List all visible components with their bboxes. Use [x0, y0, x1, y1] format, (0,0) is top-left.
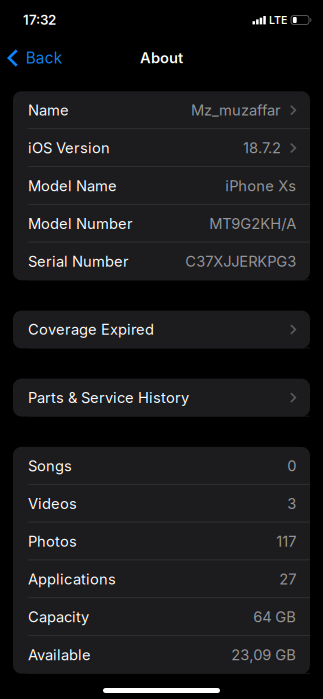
staticText: C37XJJERKPG3 — [185, 252, 296, 270]
button[interactable]: Name — [13, 91, 310, 129]
staticText: 3 — [287, 495, 296, 512]
staticText: 17:32 — [23, 12, 56, 28]
staticText: 64 GB — [253, 608, 296, 626]
button[interactable]: Parts & Service History — [13, 379, 310, 416]
staticText: Coverage Expired — [28, 321, 154, 338]
button[interactable]: Coverage Expired — [13, 311, 310, 348]
staticText: Photos — [28, 532, 77, 550]
staticText: Applications — [28, 570, 116, 588]
staticText: Serial Number — [28, 252, 129, 270]
staticText: 0 — [287, 457, 296, 475]
staticText: iOS Version — [28, 139, 110, 157]
staticText: iPhone Xs — [225, 177, 296, 195]
staticText: Name — [28, 101, 69, 119]
staticText: Model Number — [28, 215, 133, 232]
staticText: Videos — [28, 495, 77, 512]
staticText: About — [140, 49, 183, 67]
staticText: Parts & Service History — [28, 389, 189, 406]
staticText: 23,09 GB — [231, 646, 296, 664]
staticText: Mz_muzaffar — [191, 101, 281, 119]
button[interactable]: Back — [0, 40, 70, 76]
staticText: Songs — [28, 457, 72, 475]
staticText: Model Name — [28, 177, 117, 195]
staticText: Capacity — [28, 608, 89, 626]
staticText: 18.7.2 — [243, 139, 281, 157]
staticText: LTE — [269, 13, 287, 26]
button[interactable]: iOS Version — [13, 129, 310, 167]
staticText: MT9G2KH/A — [209, 215, 296, 232]
staticText: 27 — [279, 570, 296, 588]
staticText: Available — [28, 646, 91, 664]
staticText: Back — [26, 49, 62, 67]
staticText: 117 — [276, 532, 296, 550]
